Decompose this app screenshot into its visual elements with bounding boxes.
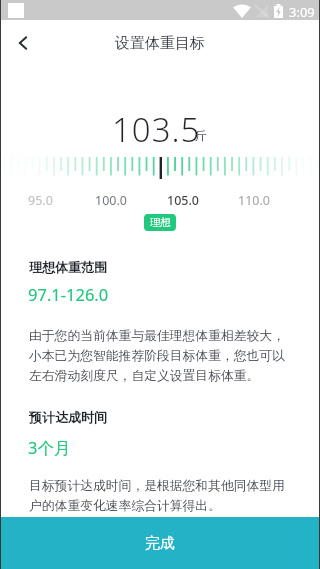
- staticText: 斤: [195, 128, 207, 143]
- staticText: 理想: [150, 216, 171, 229]
- staticText: 3个月: [28, 436, 71, 459]
- staticText: 预计达成时间: [29, 409, 107, 425]
- staticText: 完成: [145, 534, 175, 553]
- button[interactable]: Back: [1, 22, 45, 64]
- staticText: 设置体重目标: [115, 34, 205, 53]
- button[interactable]: 完成: [1, 517, 319, 569]
- staticText: 95.0: [28, 192, 53, 206]
- staticText: 100.0: [95, 192, 127, 206]
- button[interactable]: 理想: [144, 214, 176, 231]
- staticText: 110.0: [238, 192, 270, 206]
- staticText: 97.1-126.0: [28, 283, 109, 305]
- staticText: 由于您的当前体重与最佳理想体重相差较大，小本已为您智能推荐阶段目标体重，您也可以…: [29, 328, 287, 383]
- staticText: 105.0: [167, 192, 200, 206]
- staticText: 3:09: [289, 3, 315, 21]
- staticText: 103.5: [112, 107, 201, 152]
- staticText: 理想体重范围: [29, 259, 107, 275]
- staticText: 目标预计达成时间，是根据您和其他同体型用户的体重变化速率综合计算得出。: [29, 478, 287, 513]
